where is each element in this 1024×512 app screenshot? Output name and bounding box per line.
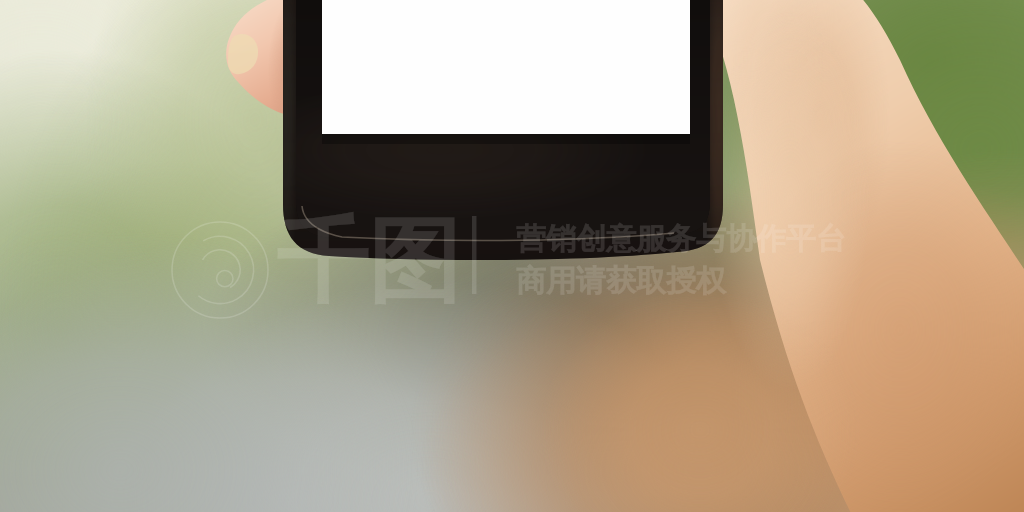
button[interactable]: Hand holding a smartphone with a blank w… — [0, 0, 1024, 512]
